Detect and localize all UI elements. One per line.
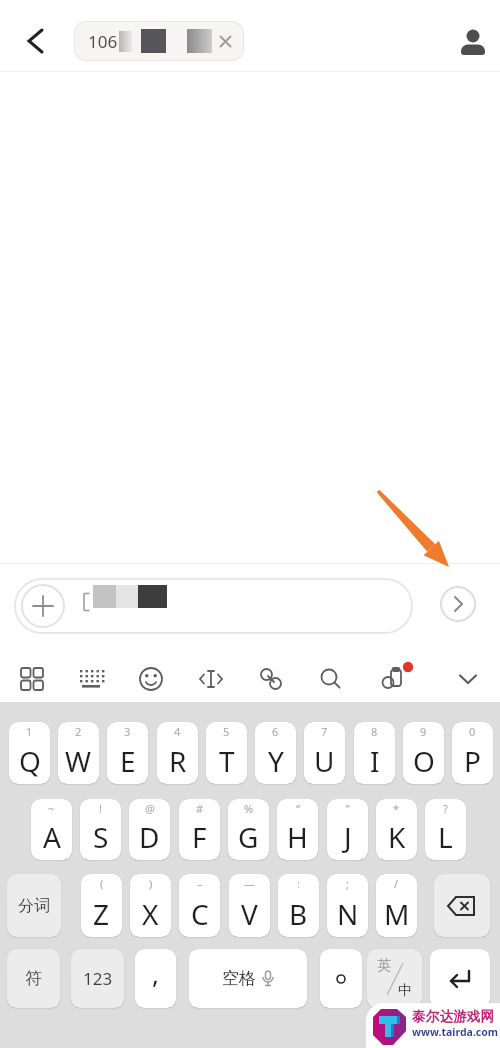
staticText: V [241, 895, 258, 933]
staticText: 符 [25, 968, 42, 989]
button[interactable]: 5 [206, 722, 247, 784]
staticText: B [289, 895, 308, 933]
button[interactable]: ? [425, 799, 466, 860]
button[interactable]: — [229, 874, 270, 937]
staticText: / [394, 876, 399, 891]
button[interactable]: : [278, 874, 319, 937]
button[interactable] [434, 874, 490, 937]
staticText: H [287, 818, 308, 856]
button[interactable]: # [179, 799, 220, 860]
button[interactable] [70, 658, 112, 700]
button[interactable]: ! [80, 799, 121, 860]
staticText: 3 [124, 724, 131, 739]
staticText: R [169, 742, 187, 780]
button[interactable]: ” [327, 799, 368, 860]
staticText: : [297, 876, 300, 891]
staticText: * [393, 801, 400, 816]
button[interactable]: 106 [74, 21, 244, 61]
staticText: @ [145, 801, 155, 816]
button[interactable]: 0 [452, 722, 493, 784]
button[interactable]: – [179, 874, 220, 937]
button[interactable]: 6 [255, 722, 296, 784]
button[interactable] [310, 658, 352, 700]
staticText: – [197, 876, 203, 891]
staticText: 7 [321, 724, 328, 739]
staticText: 2 [75, 724, 82, 739]
staticText: 123 [83, 967, 113, 990]
button[interactable]: 空格 [189, 949, 307, 1008]
staticText: 6 [272, 724, 279, 739]
staticText: ” [346, 801, 350, 816]
staticText: C [191, 895, 209, 933]
staticText: , [152, 956, 159, 991]
button[interactable] [320, 949, 362, 1008]
staticText: I [370, 742, 380, 780]
button[interactable]: 8 [354, 722, 395, 784]
button[interactable]: , [135, 949, 176, 1008]
button[interactable]: 1 [9, 722, 50, 784]
staticText: ( [100, 876, 104, 891]
staticText: N [337, 895, 359, 933]
button[interactable]: 3 [107, 722, 148, 784]
button[interactable] [373, 658, 415, 700]
staticText: K [388, 818, 406, 856]
staticText: ~ [48, 801, 55, 816]
staticText: ! [99, 801, 102, 816]
button[interactable]: “ [277, 799, 318, 860]
button[interactable] [190, 658, 232, 700]
button[interactable] [250, 658, 292, 700]
button[interactable]: * [376, 799, 417, 860]
button[interactable]: 分词 [7, 874, 61, 937]
staticText: T [219, 742, 235, 780]
staticText: 英 [377, 957, 391, 975]
staticText: W [65, 742, 92, 780]
staticText: X [142, 895, 159, 933]
button[interactable] [440, 586, 476, 622]
staticText: 4 [174, 724, 181, 739]
staticText: E [120, 742, 136, 780]
staticText: 空格 [222, 968, 256, 989]
button[interactable]: 9 [403, 722, 444, 784]
button[interactable]: 英 [367, 949, 422, 1008]
staticText: % [244, 801, 254, 816]
staticText: 106 [88, 30, 118, 53]
button[interactable] [456, 24, 490, 58]
button[interactable]: 2 [58, 722, 99, 784]
staticText: G [238, 818, 259, 856]
staticText: D [139, 818, 160, 856]
staticText: A [43, 818, 61, 856]
button[interactable] [14, 578, 413, 634]
staticText: 1 [26, 724, 33, 739]
button[interactable]: 7 [304, 722, 345, 784]
button[interactable]: ) [130, 874, 171, 937]
button[interactable] [16, 22, 54, 60]
button[interactable] [430, 949, 490, 1008]
button[interactable]: 4 [157, 722, 198, 784]
staticText: www.tairda.com [412, 1025, 499, 1039]
staticText: 中 [398, 982, 412, 1000]
staticText: Y [268, 742, 284, 780]
staticText: 5 [223, 724, 230, 739]
staticText: Z [93, 895, 110, 933]
button[interactable]: ( [81, 874, 122, 937]
button[interactable] [21, 584, 65, 628]
staticText: 泰尔达游戏网 [412, 1008, 495, 1025]
button[interactable]: 符 [7, 949, 60, 1008]
button[interactable] [11, 658, 53, 700]
button[interactable]: ; [327, 874, 368, 937]
staticText: 分词 [18, 896, 50, 916]
button[interactable] [447, 658, 489, 700]
staticText: 0 [469, 724, 476, 739]
button[interactable]: / [376, 874, 417, 937]
staticText: L [438, 818, 453, 856]
staticText: # [196, 801, 204, 816]
button[interactable]: @ [129, 799, 170, 860]
staticText: Q [19, 742, 41, 780]
button[interactable]: ~ [31, 799, 72, 860]
staticText: O [413, 742, 435, 780]
staticText: ; [346, 876, 349, 891]
button[interactable] [130, 658, 172, 700]
button[interactable]: 123 [71, 949, 124, 1008]
button[interactable]: % [228, 799, 269, 860]
staticText: M [384, 895, 410, 933]
